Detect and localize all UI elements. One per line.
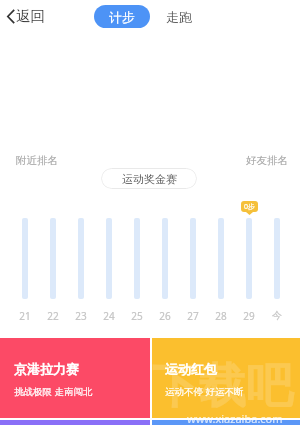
button[interactable]: 运动红包: [152, 338, 300, 418]
button[interactable]: 计步: [94, 5, 150, 28]
staticText: 29: [243, 309, 255, 323]
button[interactable]: 返回: [2, 4, 53, 28]
button[interactable]: [152, 420, 300, 425]
staticText: 21: [19, 309, 31, 323]
staticText: 返回: [16, 7, 45, 25]
button[interactable]: 附近排名: [8, 150, 66, 171]
staticText: 26: [159, 309, 171, 323]
button[interactable]: 好友排名: [238, 150, 296, 171]
staticText: 今: [272, 309, 282, 322]
staticText: 吧: [246, 357, 293, 416]
staticText: 附近排名: [16, 154, 58, 167]
staticText: 25: [131, 309, 143, 323]
staticText: 0步: [244, 202, 256, 212]
staticText: 运动奖金赛: [122, 172, 177, 186]
staticText: 挑战极限 走南闯北: [14, 385, 93, 398]
staticText: 走跑: [166, 9, 192, 25]
button[interactable]: 走跑: [162, 5, 196, 28]
staticText: 27: [187, 309, 199, 323]
staticText: 23: [75, 309, 87, 323]
staticText: 计步: [109, 9, 135, 25]
staticText: 好友排名: [246, 154, 288, 167]
staticText: 22: [47, 309, 59, 323]
button[interactable]: 京港拉力赛: [0, 338, 150, 418]
staticText: 24: [103, 309, 115, 323]
staticText: 载: [199, 357, 246, 416]
staticText: 28: [215, 309, 227, 323]
staticText: www.xiazaiba.com: [187, 411, 283, 425]
staticText: 运动红包: [165, 361, 217, 377]
staticText: 下: [152, 357, 199, 416]
staticText: 京港拉力赛: [14, 361, 79, 377]
staticText: 运动不停 好运不断: [165, 385, 244, 398]
button[interactable]: 运动奖金赛: [101, 168, 197, 189]
